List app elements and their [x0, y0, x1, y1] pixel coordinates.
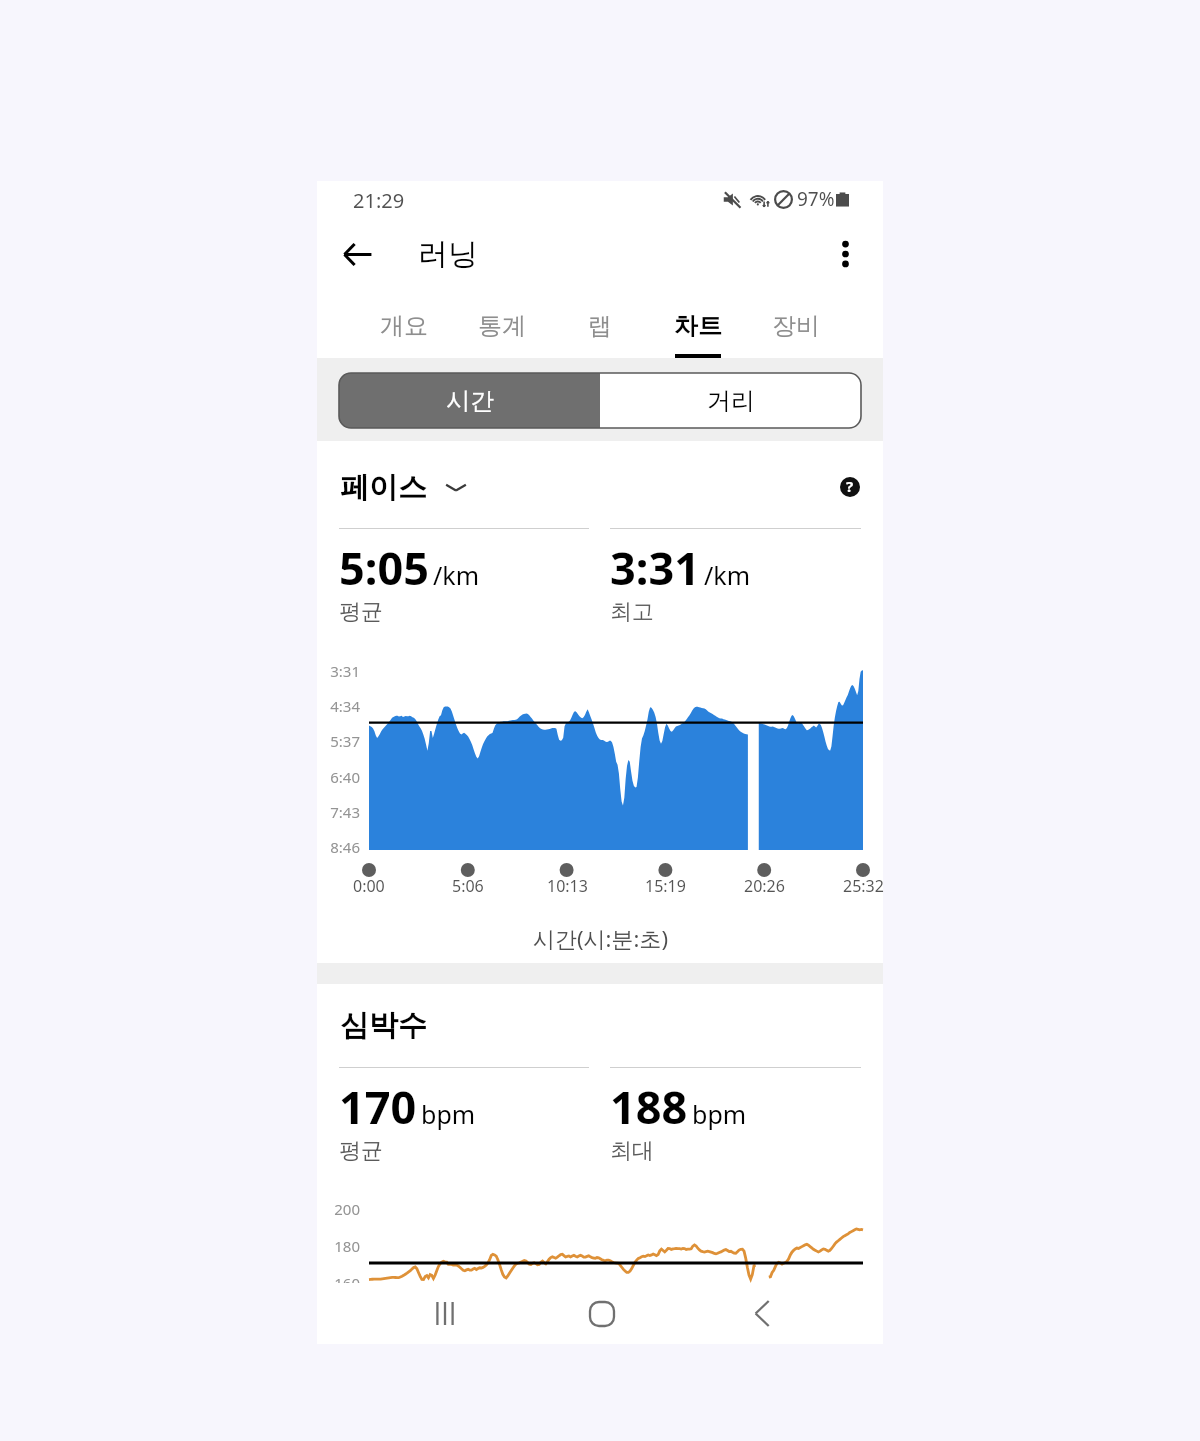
- staticText: 최고: [610, 598, 654, 626]
- staticText: 160: [325, 1273, 360, 1293]
- staticText: 거리: [707, 386, 755, 416]
- staticText: 최대: [610, 1137, 654, 1165]
- button[interactable]: Back: [734, 1283, 790, 1344]
- staticText: 개요: [380, 311, 428, 341]
- button[interactable]: Recents: [417, 1283, 473, 1344]
- staticText: 랩: [588, 311, 612, 341]
- staticText: 15:19: [645, 875, 686, 897]
- staticText: 25:32: [843, 875, 884, 897]
- staticText: 180: [325, 1236, 360, 1256]
- staticText: 러닝: [418, 235, 478, 273]
- staticText: 4:34: [325, 696, 360, 716]
- staticText: ?: [846, 477, 854, 496]
- button[interactable]: 거리: [600, 373, 861, 428]
- staticText: 7:43: [325, 802, 360, 822]
- button[interactable]: 랩: [551, 291, 649, 358]
- staticText: 3:31: [610, 537, 700, 598]
- button[interactable]: 개요: [355, 291, 453, 358]
- staticText: 페이스: [340, 469, 427, 506]
- button[interactable]: 시간: [339, 373, 600, 428]
- staticText: 심박수: [340, 1007, 427, 1044]
- staticText: 10:13: [547, 875, 588, 897]
- staticText: bpm: [692, 1097, 747, 1131]
- button[interactable]: 장비: [747, 291, 845, 358]
- staticText: 차트: [674, 311, 722, 341]
- staticText: 시간(시:분:초): [533, 923, 668, 951]
- staticText: 5:37: [325, 731, 360, 751]
- staticText: 200: [325, 1199, 360, 1219]
- staticText: 평균: [339, 1137, 383, 1165]
- staticText: 0:00: [353, 875, 385, 897]
- staticText: 188: [610, 1076, 688, 1137]
- staticText: 통계: [478, 311, 526, 341]
- staticText: 20:26: [744, 875, 785, 897]
- button[interactable]: More options: [821, 230, 869, 278]
- staticText: 170: [339, 1076, 417, 1137]
- staticText: 8:46: [325, 837, 360, 857]
- button[interactable]: Help: [830, 467, 870, 507]
- staticText: 5:05: [339, 537, 429, 598]
- button[interactable]: 차트: [649, 291, 747, 358]
- button[interactable]: Home: [574, 1283, 630, 1344]
- staticText: /km: [704, 558, 751, 592]
- staticText: 97%: [797, 186, 835, 212]
- staticText: 평균: [339, 598, 383, 626]
- staticText: /km: [433, 558, 480, 592]
- staticText: bpm: [421, 1097, 476, 1131]
- button[interactable]: Back: [333, 230, 381, 278]
- staticText: 시간: [446, 386, 494, 416]
- staticText: 5:06: [452, 875, 484, 897]
- staticText: 장비: [772, 311, 820, 341]
- staticText: 3:31: [325, 661, 360, 681]
- button[interactable]: 통계: [453, 291, 551, 358]
- staticText: 21:29: [353, 187, 405, 214]
- staticText: 6:40: [325, 767, 360, 787]
